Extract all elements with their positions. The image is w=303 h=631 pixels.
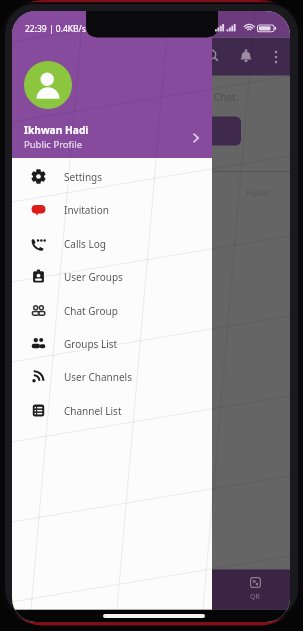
button[interactable]: Channel List <box>12 394 212 427</box>
staticText: Settings <box>64 170 103 184</box>
staticText: Public Profile <box>24 138 83 151</box>
staticText: Channel List <box>64 404 122 418</box>
button[interactable]: Notifications <box>235 46 257 68</box>
button[interactable]: Search <box>202 45 224 67</box>
button[interactable]: More options <box>265 46 287 68</box>
button[interactable]: User Channels <box>12 360 212 393</box>
staticText: User Channels <box>64 370 132 384</box>
staticText: Chat Group <box>64 304 118 318</box>
staticText: Chat. <box>214 90 239 104</box>
staticText: Calls Log <box>64 237 106 251</box>
staticText: User Groups <box>64 270 123 284</box>
button[interactable]: Calls Log <box>12 227 212 260</box>
button[interactable]: Open profile <box>189 131 203 145</box>
button[interactable]: User Groups <box>12 260 212 293</box>
button[interactable]: Groups List <box>12 327 212 360</box>
button[interactable]: Invitation <box>12 193 212 226</box>
staticText: 22:39 | 0.4KB/s <box>25 23 86 35</box>
button[interactable]: QR <box>230 570 280 610</box>
staticText: Ikhwan Hadi <box>24 123 89 137</box>
button[interactable]: Profile photo <box>24 61 72 109</box>
staticText: Public <box>246 187 271 199</box>
button[interactable]: Settings <box>12 160 212 193</box>
button[interactable]: Ikhwan Hadi, Public Profile <box>12 11 212 158</box>
staticText: Invitation <box>64 203 109 217</box>
staticText: Groups List <box>64 337 118 351</box>
staticText: QR <box>250 592 260 602</box>
button[interactable]: Chat Group <box>12 294 212 327</box>
